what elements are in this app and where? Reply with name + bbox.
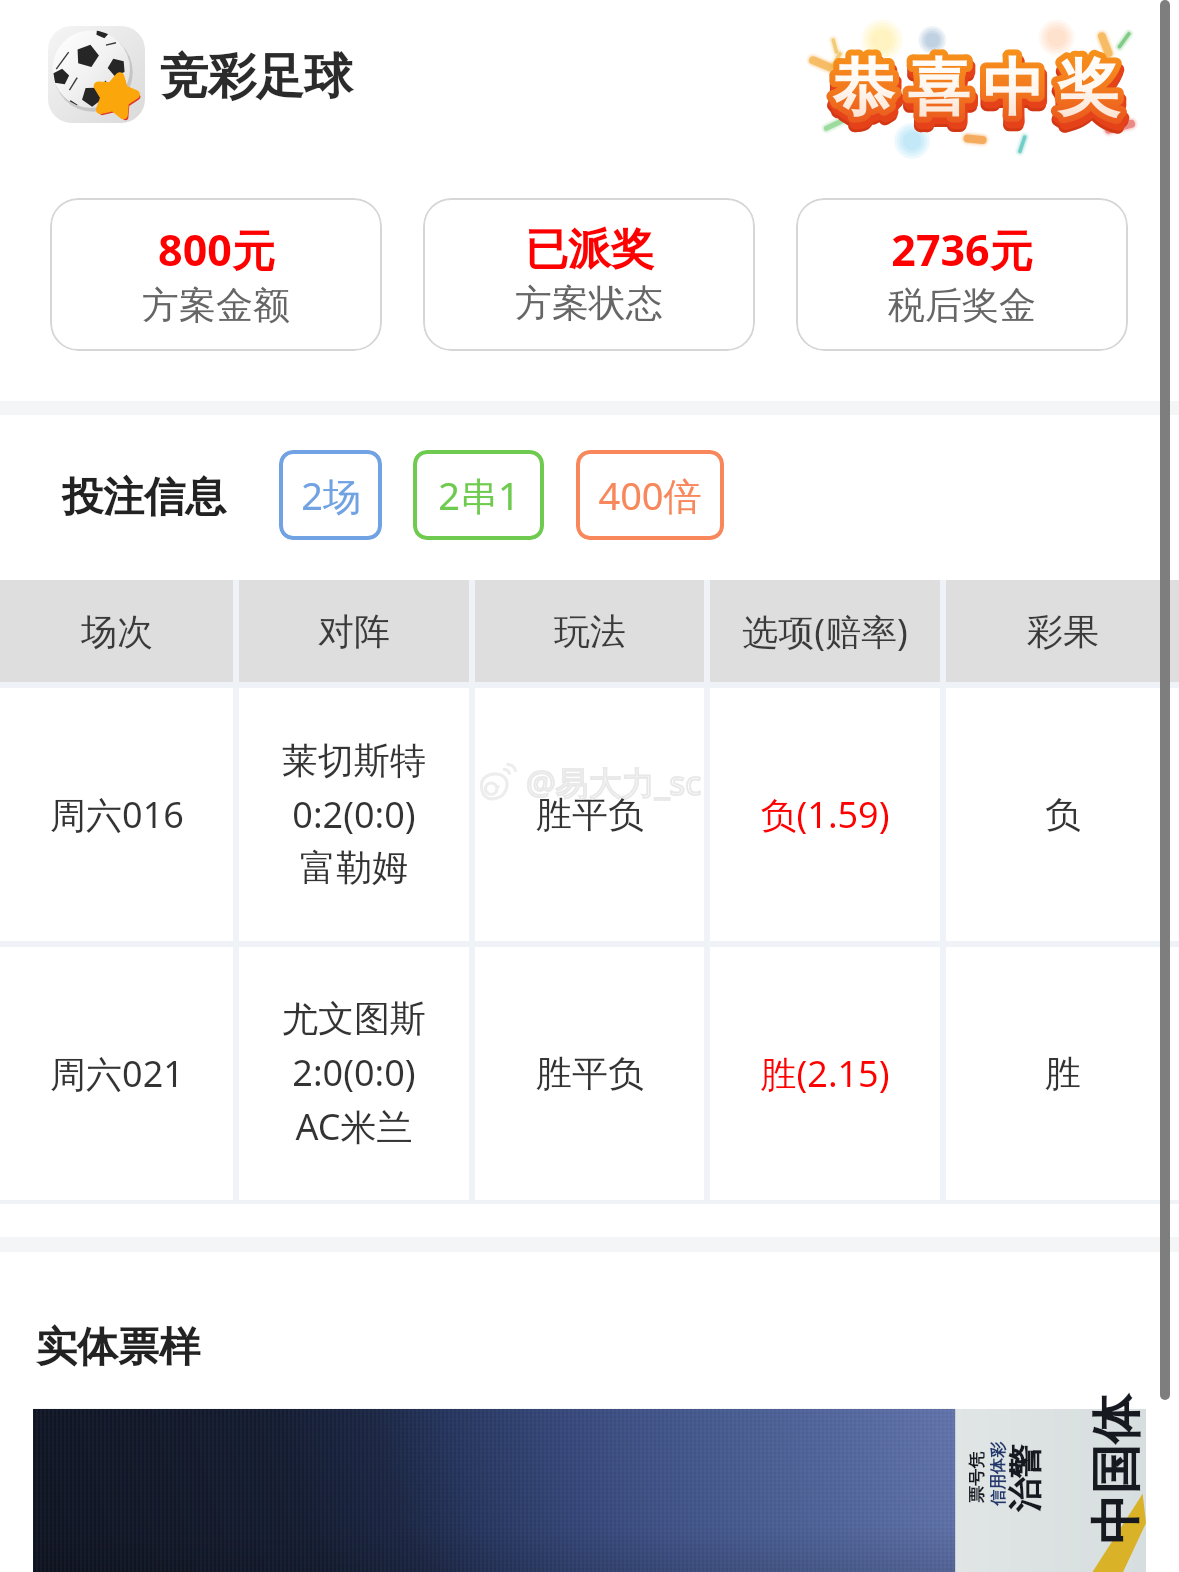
staticText: 胜 [1045, 1051, 1081, 1096]
staticText: 彩果 [1027, 609, 1099, 654]
staticText: 胜(2.15) [760, 1049, 890, 1098]
staticText: 莱切斯特 0:2(0:0) 富勒姆 [282, 738, 426, 891]
staticText: 场次 [81, 609, 153, 654]
staticText: 对阵 [318, 609, 390, 654]
staticText: 胜平负 [536, 792, 644, 837]
staticText: 选项(赔率) [742, 607, 908, 656]
staticText: 实体票样 [36, 1322, 200, 1374]
button[interactable]: 2串1 [413, 450, 544, 540]
staticText: 恭喜中奖 [827, 58, 1127, 136]
staticText: 竞彩足球 [160, 47, 352, 107]
staticText: 尤文图斯 2:0(0:0) AC米兰 [282, 996, 426, 1151]
staticText: 信用体彩 [988, 1442, 1008, 1506]
button[interactable]: 周六021 [0, 947, 1179, 1200]
staticText: 周六021 [50, 1049, 184, 1098]
staticText: 恭喜中奖 [826, 49, 1126, 127]
button[interactable]: 400倍 [576, 450, 724, 540]
staticText: 已派奖 [525, 223, 654, 277]
staticText: 恭喜中奖 [828, 55, 1128, 133]
staticText: 治警 [1002, 1444, 1045, 1512]
button[interactable]: 周六016 [0, 688, 1179, 941]
staticText: 负(1.59) [760, 790, 890, 839]
staticText: @易大力_sc [526, 760, 701, 805]
staticText: 800元 [158, 220, 275, 279]
button[interactable]: 竞彩足球 [48, 26, 145, 123]
staticText: 恭喜中奖 [827, 58, 1127, 136]
staticText: 2736元 [891, 220, 1033, 279]
button[interactable]: 已派奖 [423, 198, 755, 351]
staticText: 中国体 [1083, 1394, 1146, 1544]
staticText: 2场 [301, 469, 361, 521]
staticText: 投注信息 [62, 472, 226, 524]
button[interactable]: 实体票样照片 [33, 1409, 1146, 1572]
button[interactable]: 2场 [279, 450, 382, 540]
staticText: 方案状态 [515, 280, 663, 327]
staticText: 恭喜中奖 [826, 49, 1126, 127]
staticText: 400倍 [598, 469, 702, 521]
staticText: 负 [1045, 792, 1081, 837]
button[interactable]: 2736元 [796, 198, 1128, 351]
staticText: 方案金额 [142, 282, 290, 329]
button[interactable]: 800元 [50, 198, 382, 351]
staticText: 税后奖金 [888, 282, 1036, 329]
staticText: 胜平负 [536, 1051, 644, 1096]
staticText: 恭喜中奖 [826, 49, 1126, 127]
staticText: 票号凭 [966, 1452, 987, 1503]
staticText: 周六016 [50, 790, 184, 839]
staticText: 恭喜中奖 [828, 55, 1128, 133]
staticText: 2串1 [438, 469, 520, 521]
staticText: 玩法 [554, 609, 626, 654]
